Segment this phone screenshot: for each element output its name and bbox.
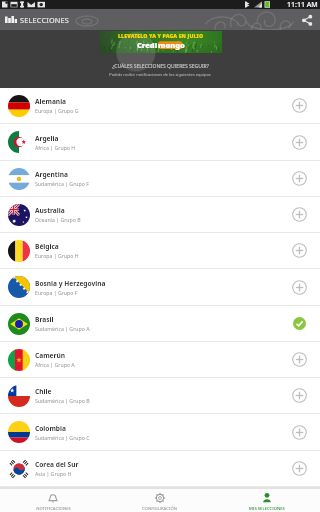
staticText: Europa | Grupo H xyxy=(35,252,79,259)
button[interactable]: Bosnia y Herzegovina xyxy=(0,269,320,305)
staticText: Brasil xyxy=(35,315,54,324)
staticText: 11:11 AM xyxy=(287,0,318,9)
button[interactable]: Add xyxy=(292,98,307,113)
button[interactable]: Camerún xyxy=(0,342,320,377)
staticText: África | Grupo H xyxy=(35,144,76,151)
staticText: Bélgica xyxy=(35,242,59,251)
staticText: NOTIFICACIONES xyxy=(36,506,71,512)
button[interactable]: MIS SELECCIONES xyxy=(213,489,320,512)
button[interactable]: Add xyxy=(292,207,307,222)
staticText: Sudamérica | Grupo A xyxy=(35,325,90,332)
button[interactable]: CONFIGURACIÓN xyxy=(106,489,213,512)
staticText: Sudamérica | Grupo C xyxy=(35,434,90,441)
staticText: Podrás recibir notificaciones de los sig… xyxy=(109,72,211,77)
button[interactable]: Add xyxy=(292,388,307,403)
staticText: ¿CUÁLES SELECCIONES QUIERES SEGUIR? xyxy=(112,63,209,70)
staticText: Alemania xyxy=(35,97,67,106)
button[interactable]: Alemania xyxy=(0,88,320,123)
staticText: Colombia xyxy=(35,424,66,433)
button[interactable]: Advertisement xyxy=(99,31,222,53)
button[interactable]: Argentina xyxy=(0,161,320,196)
staticText: Camerún xyxy=(35,351,66,360)
button[interactable]: Selected xyxy=(292,316,307,331)
staticText: África | Grupo A xyxy=(35,361,75,368)
button[interactable]: Add xyxy=(292,280,307,295)
button[interactable]: Add xyxy=(292,243,307,258)
staticText: Sudamérica | Grupo F xyxy=(35,180,89,187)
staticText: Oceanía | Grupo B xyxy=(35,216,81,223)
button[interactable]: NOTIFICACIONES xyxy=(0,489,106,512)
staticText: Sudamérica | Grupo B xyxy=(35,397,90,404)
button[interactable]: Add xyxy=(292,352,307,367)
button[interactable]: Bélgica xyxy=(0,233,320,268)
button[interactable]: Add xyxy=(292,171,307,186)
staticText: MIS SELECCIONES xyxy=(249,506,285,512)
staticText: CONFIGURACIÓN xyxy=(142,506,177,512)
staticText: Credi xyxy=(137,40,158,50)
staticText: Europa | Grupo G xyxy=(35,107,79,114)
staticText: Bosnia y Herzegovina xyxy=(35,279,106,288)
staticText: mongo xyxy=(158,40,185,50)
button[interactable]: Australia xyxy=(0,197,320,232)
staticText: Australia xyxy=(35,206,65,215)
staticText: LLEVATELO YA Y PAGA EN JULIO xyxy=(118,32,204,39)
staticText: Corea del Sur xyxy=(35,460,79,469)
button[interactable]: Add xyxy=(292,425,307,440)
button[interactable]: Brasil xyxy=(0,306,320,341)
button[interactable]: Argelia xyxy=(0,124,320,160)
staticText: Chile xyxy=(35,387,52,396)
button[interactable]: Corea del Sur xyxy=(0,451,320,486)
staticText: Asia | Grupo H xyxy=(35,470,72,477)
button[interactable]: Colombia xyxy=(0,414,320,450)
staticText: Europa | Grupo F xyxy=(35,289,78,296)
staticText: Argentina xyxy=(35,170,68,179)
button[interactable]: Add xyxy=(292,461,307,476)
button[interactable]: Share xyxy=(300,13,314,27)
button[interactable]: Add xyxy=(292,135,307,150)
button[interactable]: Chile xyxy=(0,378,320,413)
staticText: Argelia xyxy=(35,134,59,143)
staticText: SELECCIONES xyxy=(20,15,70,25)
